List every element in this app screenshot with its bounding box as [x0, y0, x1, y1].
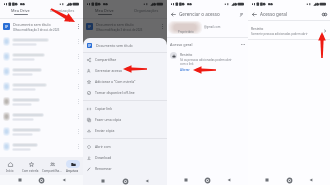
- button[interactable]: Enviar cópia: [83, 125, 167, 136]
- staticText: JP: [240, 12, 244, 17]
- staticText: Gerenciar acesso: [95, 68, 123, 73]
- staticText: Meu Drive: [95, 8, 114, 13]
- staticText: Gerenciar o acesso: [179, 11, 220, 17]
- button[interactable]: Account: [238, 11, 245, 18]
- button[interactable]: More options: [0, 94, 83, 109]
- staticText: Somente pessoas adicionadas podem abrir: [251, 32, 308, 36]
- button[interactable]: Compartilhar: [83, 54, 167, 65]
- button[interactable]: Renomear: [83, 163, 167, 174]
- staticText: Meu Drive: [11, 8, 30, 13]
- staticText: Copiar link: [95, 106, 112, 111]
- button[interactable]: Adicionar a "Com estrela": [83, 76, 167, 87]
- button[interactable]: Alterar: [180, 68, 190, 72]
- button[interactable]: More options: [83, 34, 167, 49]
- button[interactable]: Início: [0, 157, 20, 175]
- button[interactable]: Meu Drive: [0, 8, 41, 16]
- button[interactable]: Documento sem título: [0, 19, 83, 34]
- button[interactable]: More options: [75, 113, 82, 120]
- staticText: Acesso geral: [260, 11, 288, 17]
- staticText: Restrito: [180, 52, 193, 57]
- staticText: Enviar cópia: [95, 128, 115, 133]
- button[interactable]: More options: [0, 49, 83, 64]
- button[interactable]: Back: [169, 10, 177, 18]
- staticText: Documento sem título: [96, 43, 133, 48]
- button[interactable]: Organizações: [41, 8, 83, 16]
- staticText: Organizações: [134, 8, 159, 13]
- staticText: Proprietário: [178, 30, 194, 34]
- button[interactable]: More options: [75, 98, 82, 105]
- staticText: Organizações: [50, 8, 75, 13]
- button[interactable]: More options: [0, 139, 83, 154]
- staticText: Acesso geral: [170, 42, 193, 47]
- button[interactable]: Arquivos: [62, 157, 83, 175]
- staticText: Documento sem título: [13, 22, 51, 27]
- staticText: Download: [95, 155, 112, 160]
- button[interactable]: Download: [83, 152, 167, 163]
- staticText: Renomear: [95, 166, 112, 171]
- button[interactable]: More options: [75, 53, 82, 60]
- button[interactable]: More options: [159, 23, 166, 30]
- button[interactable]: More options: [0, 64, 83, 79]
- staticText: Compartilhar: [95, 57, 117, 62]
- button[interactable]: Copiar link: [83, 103, 167, 114]
- staticText: Compartilha...: [42, 169, 62, 173]
- staticText: Olhou modificação 3 de out. de 2023: [13, 28, 60, 32]
- button[interactable]: Documento sem título: [83, 19, 167, 34]
- staticText: Início: [6, 169, 14, 173]
- button[interactable]: More options: [75, 38, 82, 45]
- staticText: Adicionar atalho ao Google Drive: [95, 177, 148, 182]
- button[interactable]: Adicionar atalho ao Google Drive: [83, 174, 167, 185]
- staticText: Alterar: [180, 68, 190, 72]
- staticText: Adicionar a "Com estrela": [95, 79, 136, 84]
- button[interactable]: Tornar disponível off-line: [83, 87, 167, 98]
- staticText: Com estrela: [22, 169, 39, 173]
- button[interactable]: More options: [83, 49, 167, 64]
- staticText: Restrito: [251, 26, 264, 31]
- button[interactable]: More options: [75, 128, 82, 135]
- button[interactable]: More options: [159, 38, 166, 45]
- staticText: Arquivos: [66, 169, 79, 173]
- staticText: Fazer uma cópia: [95, 117, 122, 122]
- button[interactable]: Help: [321, 11, 327, 17]
- button[interactable]: More options: [75, 143, 82, 150]
- staticText: com o link: [180, 62, 194, 66]
- button[interactable]: More options: [75, 68, 82, 75]
- staticText: @gmail.com: [204, 25, 221, 29]
- staticText: Olhou modificação 3 de out. de 2023: [96, 28, 143, 32]
- staticText: Só as pessoas adicionadas podem abrir: [180, 58, 232, 62]
- button[interactable]: Com estrela: [20, 157, 41, 175]
- button[interactable]: More options: [0, 109, 83, 124]
- button[interactable]: More options: [0, 34, 83, 49]
- staticText: Documento sem título: [96, 22, 134, 27]
- button[interactable]: More options: [75, 83, 82, 90]
- staticText: Tornar disponível off-line: [95, 90, 135, 95]
- button[interactable]: More options: [75, 23, 82, 30]
- button[interactable]: Restrito: [248, 24, 330, 37]
- button[interactable]: Fazer uma cópia: [83, 114, 167, 125]
- button[interactable]: Gerenciar acesso: [83, 65, 167, 76]
- button[interactable]: Abrir com: [83, 141, 167, 152]
- button[interactable]: Compartilha...: [41, 157, 62, 175]
- staticText: Abrir com: [95, 144, 111, 149]
- button[interactable]: Back: [250, 10, 258, 18]
- button[interactable]: More options: [0, 124, 83, 139]
- button[interactable]: More options: [0, 79, 83, 94]
